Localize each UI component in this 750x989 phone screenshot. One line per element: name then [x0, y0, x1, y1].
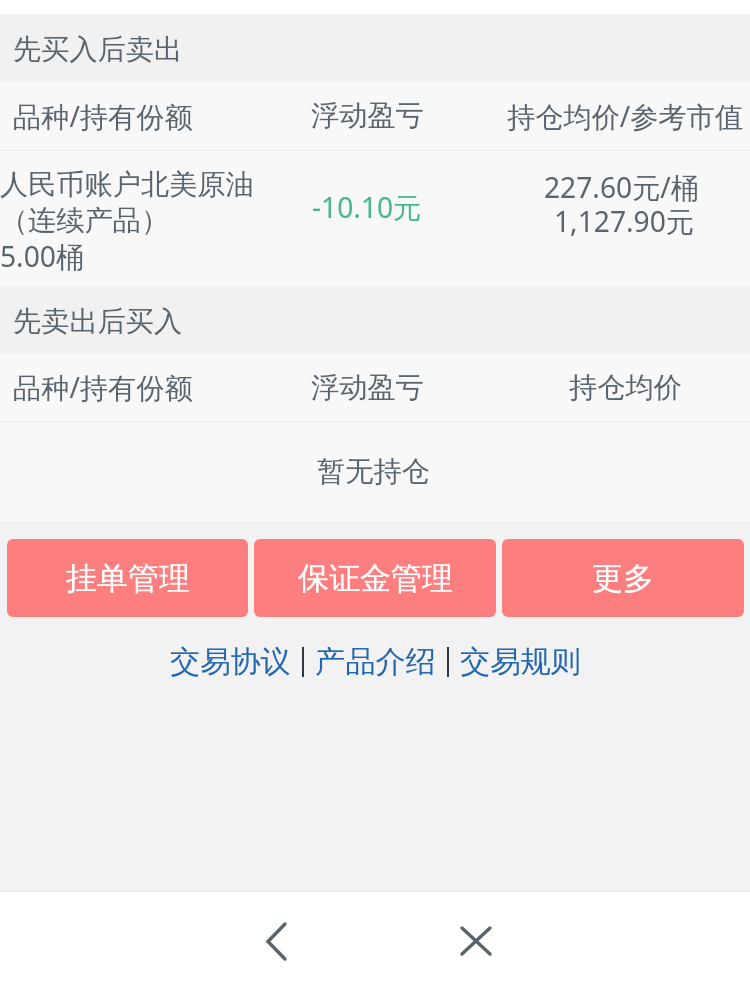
- staticText: 更多: [592, 559, 654, 598]
- staticText: 227.60元/桶: [544, 168, 700, 207]
- staticText: 挂单管理: [66, 559, 190, 598]
- staticText: -10.10元: [312, 188, 422, 227]
- button[interactable]: 挂单管理: [7, 539, 248, 617]
- staticText: 1,127.90元: [554, 202, 695, 241]
- button[interactable]: 先卖出后买入: [0, 286, 750, 354]
- button[interactable]: 先买入后卖出: [0, 14, 750, 82]
- staticText: 持仓均价/参考市值: [507, 97, 743, 136]
- staticText: 先买入后卖出: [13, 32, 183, 68]
- staticText: 保证金管理: [298, 559, 453, 598]
- button[interactable]: 更多: [502, 539, 744, 617]
- staticText: 浮动盈亏: [311, 370, 424, 406]
- staticText: 浮动盈亏: [311, 98, 424, 134]
- button[interactable]: 交易协议: [170, 643, 291, 681]
- staticText: 产品介绍: [315, 643, 436, 681]
- staticText: 暂无持仓: [317, 454, 430, 490]
- button[interactable]: 保证金管理: [254, 539, 496, 617]
- staticText: 先卖出后买入: [13, 304, 183, 340]
- button[interactable]: 交易规则: [460, 643, 581, 681]
- button[interactable]: 人民币账户北美原油 （连续产品） 5.00桶: [0, 151, 750, 286]
- staticText: 持仓均价: [569, 370, 682, 406]
- staticText: 人民币账户北美原油 （连续产品） 5.00桶: [0, 167, 254, 276]
- button[interactable]: 产品介绍: [315, 643, 436, 681]
- button[interactable]: Close: [436, 901, 516, 981]
- staticText: 交易规则: [460, 643, 581, 681]
- button[interactable]: Back: [236, 901, 316, 981]
- staticText: 品种/持有份额: [13, 97, 193, 136]
- staticText: 品种/持有份额: [13, 368, 193, 407]
- staticText: 交易协议: [170, 643, 291, 681]
